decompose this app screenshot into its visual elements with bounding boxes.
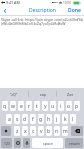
staticText: y bbox=[44, 103, 47, 110]
staticText: 123 bbox=[4, 141, 10, 146]
staticText: o bbox=[67, 103, 71, 110]
button[interactable]: n bbox=[54, 126, 60, 136]
button[interactable]: c bbox=[30, 126, 36, 136]
staticText: x bbox=[24, 128, 27, 135]
staticText: n bbox=[55, 128, 59, 135]
staticText: f bbox=[32, 116, 34, 123]
staticText: k bbox=[64, 116, 67, 123]
button[interactable]: h bbox=[46, 114, 52, 124]
staticText: 100% bbox=[63, 1, 72, 5]
staticText: Done bbox=[68, 7, 81, 14]
button[interactable]: space bbox=[32, 138, 63, 148]
button[interactable]: m bbox=[62, 126, 68, 136]
button[interactable]: e bbox=[18, 101, 24, 111]
staticText: i bbox=[60, 103, 62, 110]
button[interactable]: p bbox=[74, 101, 80, 111]
button[interactable]: f bbox=[30, 114, 36, 124]
button[interactable]: Emoji bbox=[14, 138, 21, 148]
staticText: return bbox=[69, 141, 80, 146]
button[interactable]: a bbox=[6, 114, 12, 124]
staticText: d bbox=[23, 116, 27, 123]
button[interactable]: d bbox=[22, 114, 28, 124]
staticText: w bbox=[11, 103, 15, 110]
staticText: Zoe bbox=[67, 92, 74, 97]
button[interactable]: i bbox=[58, 101, 64, 111]
button[interactable]: t bbox=[34, 101, 40, 111]
button[interactable]: Backspace bbox=[71, 126, 83, 136]
button[interactable]: b bbox=[46, 126, 52, 136]
staticText: p bbox=[75, 103, 79, 110]
button[interactable]: Done bbox=[68, 6, 81, 15]
staticText: a bbox=[8, 116, 11, 123]
staticText: t bbox=[36, 103, 38, 110]
staticText: c bbox=[32, 128, 35, 135]
staticText: Description bbox=[29, 7, 56, 14]
staticText: v bbox=[40, 128, 43, 135]
staticText: h bbox=[47, 116, 51, 123]
staticText: l bbox=[72, 116, 74, 123]
button[interactable]: v bbox=[38, 126, 44, 136]
other: Shift bbox=[4, 129, 8, 133]
staticText: space bbox=[43, 141, 53, 146]
button[interactable]: j bbox=[54, 114, 60, 124]
staticText: s bbox=[16, 116, 19, 123]
button[interactable]: r bbox=[26, 101, 32, 111]
staticText: z bbox=[16, 128, 19, 135]
staticText: Skype call link: https://join.skype.com/… bbox=[1, 17, 83, 26]
staticText: “zQ” bbox=[10, 92, 18, 97]
staticText: g bbox=[39, 116, 43, 123]
button[interactable]: l bbox=[70, 114, 76, 124]
button[interactable]: y bbox=[42, 101, 48, 111]
other: Backspace bbox=[75, 129, 80, 133]
button[interactable]: o bbox=[66, 101, 72, 111]
other: Dictate bbox=[25, 141, 29, 145]
staticText: e bbox=[20, 103, 23, 110]
button[interactable]: w bbox=[10, 101, 16, 111]
button[interactable]: g bbox=[38, 114, 44, 124]
button[interactable]: zap bbox=[29, 88, 56, 100]
button[interactable]: Shift bbox=[1, 126, 11, 136]
staticText: r bbox=[28, 103, 31, 110]
button[interactable]: 123 bbox=[1, 138, 12, 148]
staticText: 9:41 AM bbox=[6, 0, 20, 5]
other: Emoji bbox=[16, 141, 20, 145]
staticText: j bbox=[56, 116, 58, 123]
button[interactable]: “zQ” bbox=[0, 88, 28, 100]
button[interactable]: return bbox=[65, 138, 83, 148]
staticText: b bbox=[47, 128, 51, 135]
button[interactable]: u bbox=[50, 101, 56, 111]
button[interactable]: x bbox=[22, 126, 28, 136]
button[interactable]: k bbox=[62, 114, 68, 124]
staticText: u bbox=[51, 103, 55, 110]
button[interactable]: z bbox=[14, 126, 20, 136]
staticText: q bbox=[3, 103, 7, 110]
button[interactable]: Back bbox=[0, 6, 10, 15]
button[interactable]: Zoe bbox=[57, 88, 84, 100]
button[interactable]: s bbox=[14, 114, 20, 124]
button[interactable]: Dictate bbox=[23, 138, 30, 148]
button[interactable]: q bbox=[2, 101, 8, 111]
staticText: m bbox=[63, 128, 68, 135]
staticText: zap bbox=[40, 92, 46, 97]
